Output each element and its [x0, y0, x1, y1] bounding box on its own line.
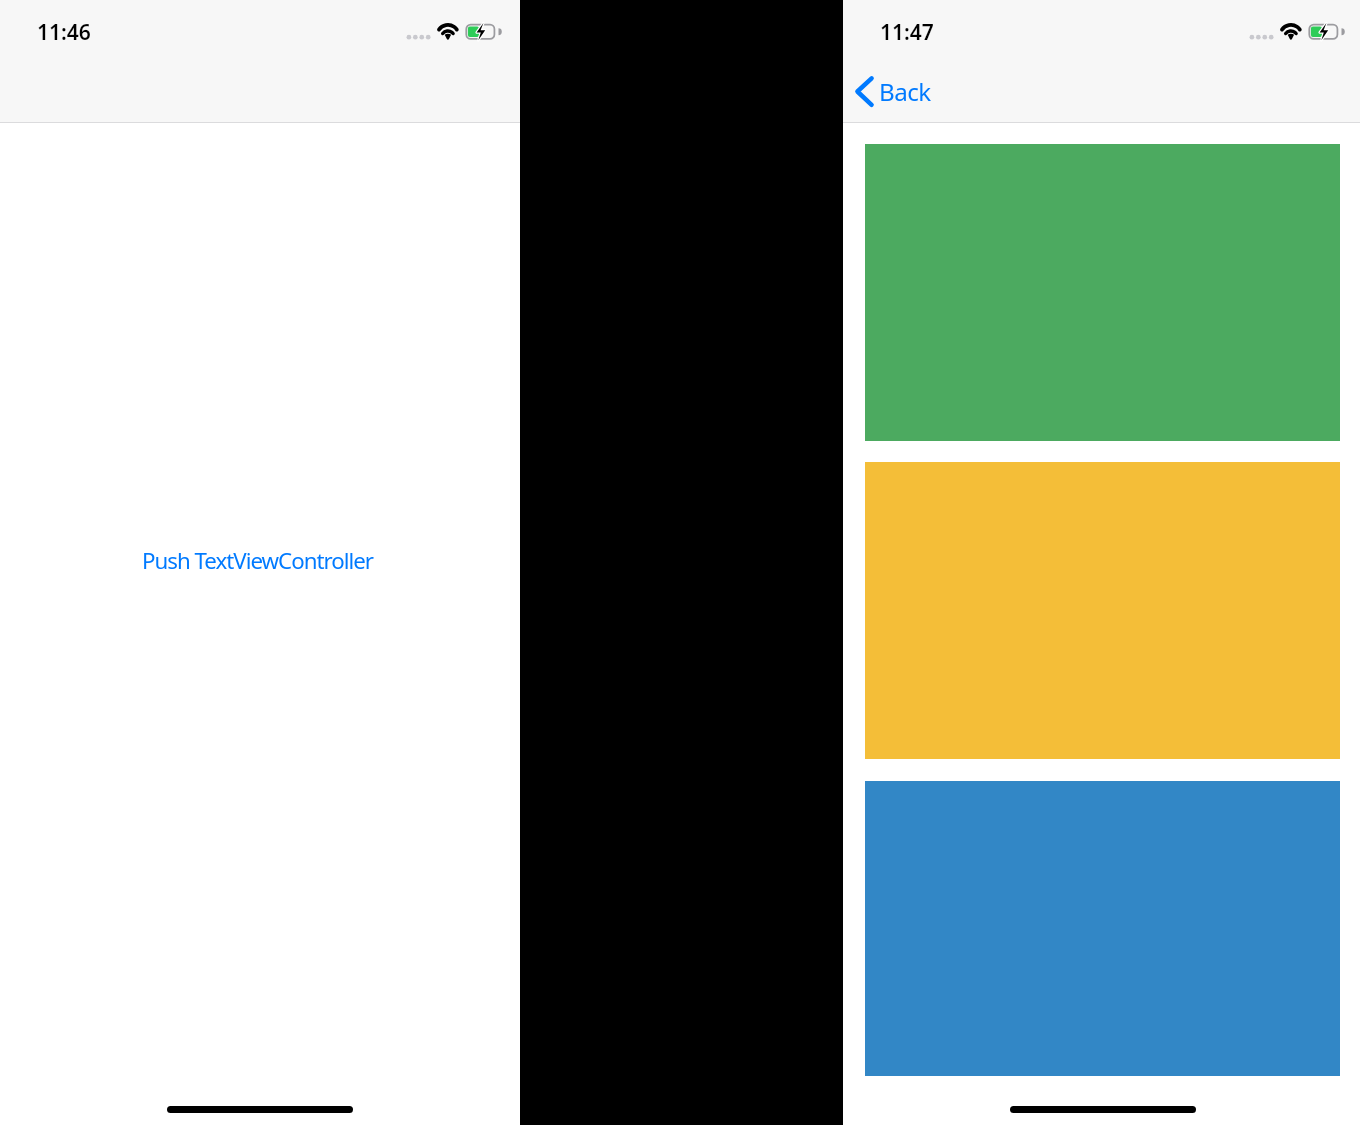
staticText: 11:46 — [37, 18, 91, 47]
staticText: Push TextViewController — [142, 545, 374, 575]
button[interactable]: Back — [852, 70, 941, 112]
staticText: 11:47 — [880, 18, 934, 47]
button[interactable]: Push TextViewController — [132, 537, 384, 583]
staticText: Back — [879, 75, 931, 108]
